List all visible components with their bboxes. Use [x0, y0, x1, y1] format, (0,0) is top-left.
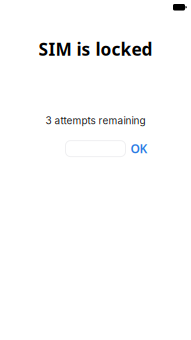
staticText: 3 attempts remaining	[45, 114, 145, 127]
staticText: OK	[130, 141, 147, 156]
button[interactable]: OK	[130, 141, 147, 156]
staticText: SIM is locked	[38, 37, 152, 60]
button[interactable]: SIM PIN	[65, 141, 125, 157]
